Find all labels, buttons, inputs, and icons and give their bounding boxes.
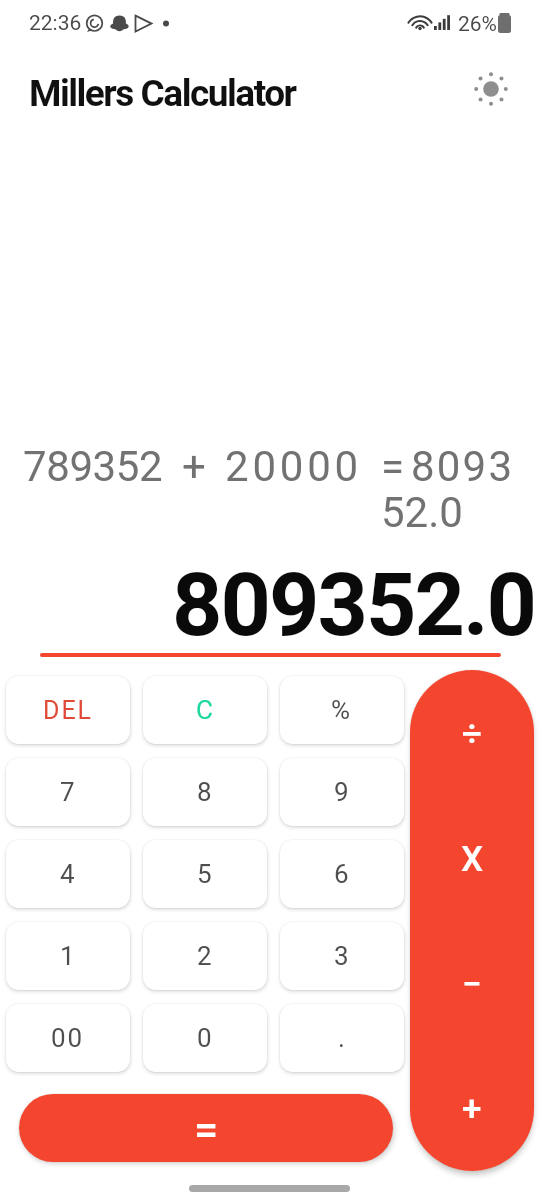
staticText: 00 — [51, 1023, 85, 1053]
button[interactable]: 7 — [6, 758, 130, 826]
button[interactable]: . — [280, 1004, 404, 1072]
staticText: Millers Calculator — [29, 72, 296, 115]
staticText: 6 — [334, 859, 351, 889]
button[interactable]: 6 — [280, 840, 404, 908]
staticText: + — [182, 442, 206, 491]
staticText: 22:36 — [29, 11, 82, 36]
staticText: 3 — [334, 941, 351, 971]
staticText: 52.0 — [381, 488, 463, 537]
staticText: 9 — [334, 777, 351, 807]
staticText: 809352.0 — [172, 553, 536, 656]
button[interactable]: Toggle brightness — [467, 65, 515, 113]
button[interactable]: C — [143, 676, 267, 744]
staticText: − — [462, 964, 482, 1005]
button[interactable]: 8 — [143, 758, 267, 826]
staticText: % — [331, 695, 353, 725]
staticText: = — [381, 442, 405, 491]
button[interactable]: 5 — [143, 840, 267, 908]
button[interactable]: % — [280, 676, 404, 744]
button[interactable]: + — [410, 1045, 534, 1170]
staticText: 4 — [60, 859, 77, 889]
staticText: 26% — [458, 12, 497, 37]
button[interactable]: 2 — [143, 922, 267, 990]
button[interactable]: 00 — [6, 1004, 130, 1072]
staticText: = — [194, 1104, 219, 1154]
staticText: 5 — [197, 859, 214, 889]
staticText: 8 — [197, 777, 214, 807]
staticText: + — [462, 1089, 482, 1130]
staticText: 2 — [197, 941, 214, 971]
button[interactable]: ÷ — [410, 670, 534, 795]
button[interactable]: 1 — [6, 922, 130, 990]
staticText: 0 — [197, 1023, 214, 1053]
staticText: 8093 — [411, 442, 515, 491]
staticText: C — [196, 695, 215, 725]
staticText: DEL — [43, 696, 94, 725]
staticText: 20000 — [225, 442, 363, 491]
button[interactable]: 4 — [6, 840, 130, 908]
button[interactable]: DEL — [6, 676, 130, 744]
button[interactable]: 0 — [143, 1004, 267, 1072]
button[interactable]: 9 — [280, 758, 404, 826]
staticText: 7 — [60, 777, 77, 807]
button[interactable]: 3 — [280, 922, 404, 990]
staticText: 789352 — [23, 442, 163, 491]
staticText: X — [461, 839, 484, 880]
button[interactable]: X — [410, 795, 534, 920]
staticText: 1 — [60, 941, 77, 971]
staticText: . — [338, 1023, 347, 1053]
staticText: ÷ — [462, 714, 482, 755]
button[interactable]: − — [410, 920, 534, 1045]
button[interactable]: = — [19, 1094, 393, 1162]
